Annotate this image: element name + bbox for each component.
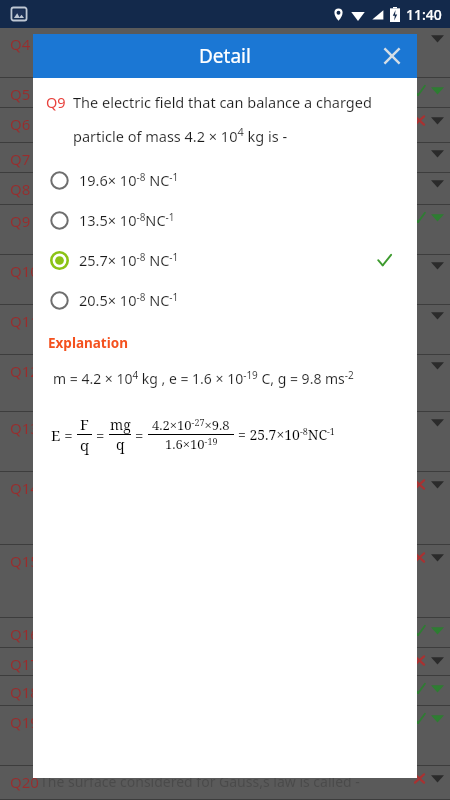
staticText: = 25.7×10-8NC-1 bbox=[238, 425, 335, 444]
staticText: Detail bbox=[199, 43, 251, 69]
button[interactable]: Q17 bbox=[0, 648, 450, 676]
button[interactable]: 25.7× 10-8 NC-1 bbox=[33, 240, 417, 280]
staticText: Q10 bbox=[10, 261, 39, 281]
staticText: 25.7× 10-8 NC-1 bbox=[79, 250, 179, 270]
staticText: q bbox=[80, 435, 90, 455]
staticText: Q16 bbox=[10, 624, 39, 644]
staticText: Q8 bbox=[10, 179, 31, 199]
button[interactable]: Q20 bbox=[0, 766, 450, 800]
staticText: Q4 bbox=[10, 34, 31, 54]
staticText: Q20 bbox=[10, 772, 39, 792]
staticText: 13.5× 10-8NC-1 bbox=[79, 210, 175, 230]
staticText: F bbox=[80, 414, 89, 434]
staticText: = bbox=[96, 425, 105, 445]
button[interactable]: Q7 bbox=[0, 143, 450, 173]
staticText: Q11 bbox=[10, 311, 39, 331]
button[interactable]: Q13 bbox=[0, 412, 450, 472]
button[interactable]: 13.5× 10-8NC-1 bbox=[33, 200, 417, 240]
staticText: = bbox=[135, 425, 144, 445]
button[interactable]: Q14 bbox=[0, 472, 450, 545]
staticText: Q19 bbox=[10, 712, 39, 732]
staticText: Q6 bbox=[10, 114, 31, 134]
staticText: m = 4.2 × 104 kg , e = 1.6 × 10-19 C, g … bbox=[53, 368, 354, 388]
staticText: Q17 bbox=[10, 654, 39, 674]
button[interactable]: Q4 bbox=[0, 28, 450, 78]
staticText: The surface considered for Gauss,s law i… bbox=[40, 772, 360, 791]
button[interactable]: Q18 bbox=[0, 676, 450, 706]
staticText: Q15 bbox=[10, 551, 39, 571]
button[interactable]: 20.5× 10-8 NC-1 bbox=[33, 280, 417, 320]
button[interactable]: Q15 bbox=[0, 545, 450, 618]
staticText: E = bbox=[51, 425, 73, 445]
staticText: Q9 bbox=[10, 211, 31, 231]
staticText: 11:40 bbox=[406, 5, 442, 24]
staticText: q bbox=[116, 435, 125, 454]
button[interactable]: Q5 bbox=[0, 78, 450, 108]
staticText: Q12 bbox=[10, 361, 39, 381]
staticText: Q13 bbox=[10, 418, 39, 438]
staticText: Q9 bbox=[46, 92, 66, 112]
staticText: Q18 bbox=[10, 682, 39, 702]
button[interactable]: Q10 bbox=[0, 255, 450, 305]
staticText: The electric field that can balance a ch… bbox=[73, 92, 407, 146]
button[interactable]: Q12 bbox=[0, 355, 450, 412]
staticText: 4.2×10-27×9.8 bbox=[152, 416, 230, 434]
staticText: 1.6×10-19 bbox=[165, 435, 218, 453]
button[interactable]: Q16 bbox=[0, 618, 450, 648]
staticText: Q5 bbox=[10, 84, 31, 104]
button[interactable]: Q9 bbox=[0, 205, 450, 255]
button[interactable]: Q11 bbox=[0, 305, 450, 355]
staticText: 19.6× 10-8 NC-1 bbox=[79, 170, 179, 190]
button[interactable]: 19.6× 10-8 NC-1 bbox=[33, 160, 417, 200]
button[interactable]: Q8 bbox=[0, 173, 450, 205]
staticText: 20.5× 10-8 NC-1 bbox=[79, 290, 179, 310]
staticText: Q14 bbox=[10, 478, 39, 498]
staticText: Q7 bbox=[10, 149, 31, 169]
staticText: mg bbox=[110, 415, 131, 434]
button[interactable]: Q6 bbox=[0, 108, 450, 143]
button[interactable]: Close bbox=[377, 41, 407, 71]
staticText: Explanation bbox=[48, 334, 128, 352]
button[interactable]: Q19 bbox=[0, 706, 450, 766]
